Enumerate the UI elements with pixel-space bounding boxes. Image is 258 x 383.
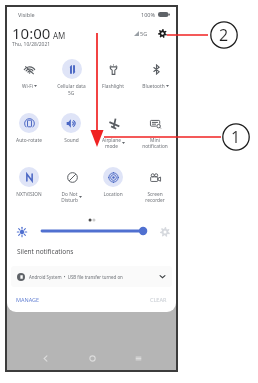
button[interactable]: Settings (157, 28, 168, 39)
staticText: Auto-rotate (16, 137, 42, 144)
button[interactable]: NXTVISION (7, 161, 50, 215)
staticText: 1 (231, 126, 241, 148)
button[interactable]: Flashlight (92, 53, 134, 107)
staticText: Mini notification (142, 137, 168, 149)
button[interactable]: CLEAR (150, 296, 167, 303)
button[interactable]: Back (37, 350, 53, 366)
staticText: MANAGE (16, 296, 40, 303)
staticText: 100% (141, 11, 156, 18)
staticText: Flashlight (102, 83, 124, 90)
button[interactable]: Do Not Disturb (50, 161, 92, 215)
staticText: Wi-Fi (22, 83, 33, 90)
button[interactable]: Auto-rotate (7, 107, 50, 161)
staticText: 5G (68, 90, 75, 97)
staticText: Airplane mode (102, 137, 121, 149)
staticText: 10:00 (12, 23, 51, 43)
staticText: Silent notifications (17, 247, 74, 256)
staticText: Sound (64, 137, 79, 144)
staticText: Thu, 10/28/2021 (12, 41, 51, 48)
staticText: 2 (219, 24, 229, 46)
staticText: CLEAR (150, 296, 167, 303)
staticText: AM (53, 30, 66, 41)
staticText: NXTVISION (16, 191, 42, 198)
button[interactable]: Recents (130, 350, 146, 366)
button[interactable]: Sound (50, 107, 92, 161)
button[interactable]: Auto brightness (160, 227, 170, 237)
button[interactable]: MANAGE (16, 296, 40, 303)
staticText: Screen recorder (145, 191, 165, 203)
staticText: Location (103, 191, 123, 198)
button[interactable]: Cellular data (50, 53, 92, 107)
button[interactable]: Wi-Fi (7, 53, 50, 107)
staticText: Bluetooth (142, 83, 165, 90)
button[interactable]: Location (92, 161, 134, 215)
staticText: Do Not Disturb (61, 191, 78, 203)
button[interactable]: Bluetooth (134, 53, 176, 107)
staticText: Visible (18, 11, 35, 18)
staticText: Android System • USB file transfer turne… (29, 274, 123, 280)
button[interactable]: Screen recorder (134, 161, 176, 215)
button[interactable]: Mini notification (134, 107, 176, 161)
button[interactable]: Home (84, 350, 100, 366)
staticText: 5G (140, 30, 148, 37)
button[interactable]: Android System • USB file transfer turne… (11, 266, 172, 287)
staticText: Cellular data (57, 83, 86, 90)
button[interactable]: Airplane mode (92, 107, 134, 161)
